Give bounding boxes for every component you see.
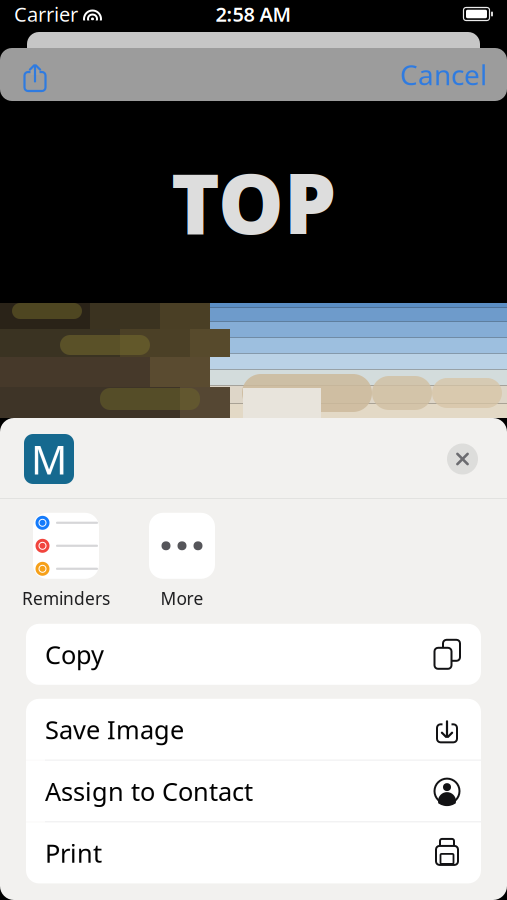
staticText: M xyxy=(31,432,67,485)
staticText: TOP xyxy=(171,147,336,257)
staticText: 2:58 AM xyxy=(215,1,291,27)
button[interactable]: Copy xyxy=(26,624,481,685)
button[interactable]: Print xyxy=(26,822,481,883)
staticText: Print xyxy=(45,836,102,870)
button[interactable]: Cancel xyxy=(394,52,493,97)
staticText: Copy xyxy=(45,637,104,671)
button[interactable]: Save Image xyxy=(26,699,481,760)
button[interactable]: Close xyxy=(442,438,483,479)
button[interactable]: Share xyxy=(14,54,56,94)
staticText: More xyxy=(160,587,203,610)
button[interactable]: Assign to Contact xyxy=(26,761,481,822)
staticText: Reminders xyxy=(22,587,110,610)
button[interactable]: More xyxy=(134,513,230,610)
staticText: Cancel xyxy=(400,56,487,93)
button[interactable]: Reminders xyxy=(18,513,114,610)
staticText: Assign to Contact xyxy=(45,774,253,808)
staticText: Carrier xyxy=(14,1,78,27)
staticText: Save Image xyxy=(45,712,184,746)
